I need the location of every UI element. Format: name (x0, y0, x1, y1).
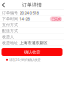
staticText: 请在24小时内确认收货 (9, 58, 40, 62)
staticText: 订单编号 (2, 10, 18, 15)
staticText: 支付方式 (2, 22, 18, 27)
button[interactable]: 确认收货 (1, 48, 62, 56)
staticText: 收货人 (2, 34, 14, 39)
staticText: 14:28 (20, 17, 30, 21)
staticText: 配送方式 (2, 28, 18, 33)
staticText: 已完成 (51, 17, 60, 21)
staticText: 下单时间 (2, 16, 18, 21)
staticText: 订单详情 (22, 2, 42, 8)
staticText: 上海市浦东新区 (20, 40, 48, 45)
button[interactable]: Back (0, 0, 8, 10)
staticText: 20240518 (20, 11, 39, 15)
staticText: 收货地址 (2, 40, 18, 45)
staticText: 确认收货 (24, 49, 40, 55)
